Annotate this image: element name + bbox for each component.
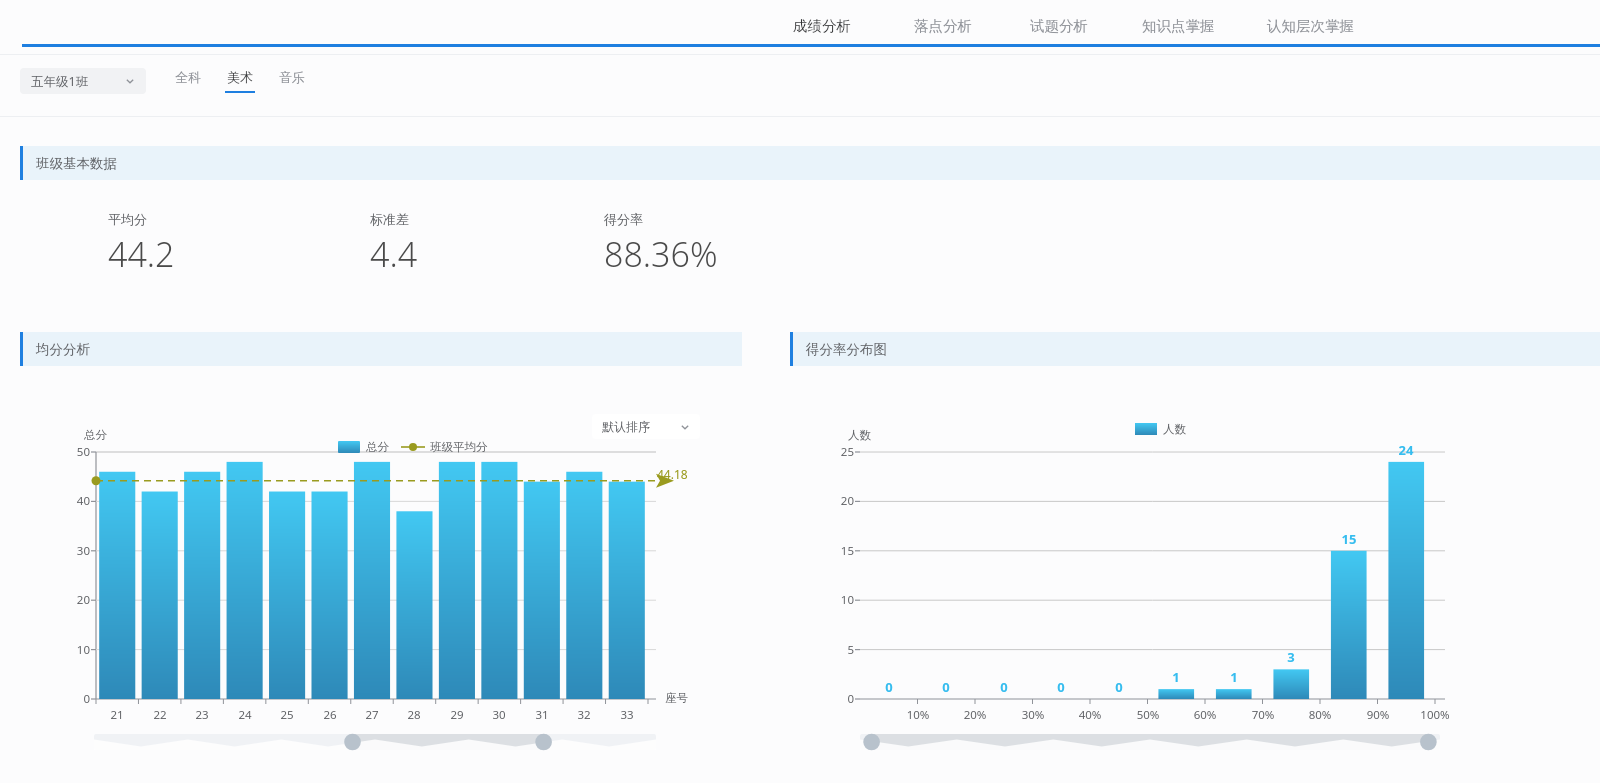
staticText: 0: [1099, 678, 1139, 696]
button[interactable]: [94, 734, 656, 750]
staticText: 28: [398, 707, 430, 723]
staticText: 33: [611, 707, 643, 723]
staticText: 31: [526, 707, 558, 723]
staticText: 座号: [665, 691, 688, 705]
staticText: 44.2: [108, 231, 175, 277]
staticText: 29: [441, 707, 473, 723]
staticText: 人数: [1163, 422, 1186, 436]
button[interactable]: 知识点掌握: [378, 0, 1600, 47]
staticText: 40%: [1068, 707, 1112, 723]
staticText: 1: [1156, 668, 1196, 686]
staticText: 80%: [1298, 707, 1342, 723]
staticText: 成绩分析: [793, 17, 851, 35]
staticText: 班级平均分: [430, 440, 488, 454]
staticText: 全科: [175, 69, 201, 85]
staticText: 20: [826, 493, 854, 509]
staticText: 50: [62, 444, 90, 460]
staticText: 20%: [953, 707, 997, 723]
staticText: 15: [826, 543, 854, 559]
staticText: 美术: [227, 69, 253, 85]
staticText: 平均分: [108, 211, 147, 227]
staticText: 24: [1386, 441, 1426, 459]
staticText: 32: [568, 707, 600, 723]
staticText: 25: [826, 444, 854, 460]
staticText: 50%: [1126, 707, 1170, 723]
button[interactable]: 五年级1班: [20, 68, 146, 94]
staticText: 默认排序: [602, 419, 650, 434]
staticText: 0: [1041, 678, 1081, 696]
button[interactable]: 落点分析: [143, 0, 1600, 47]
button[interactable]: 成绩分析: [22, 0, 1600, 47]
staticText: 标准差: [370, 211, 409, 227]
staticText: 落点分析: [914, 17, 972, 35]
button[interactable]: [860, 734, 1440, 750]
staticText: 21: [101, 707, 133, 723]
staticText: 30: [483, 707, 515, 723]
staticText: 总分: [366, 440, 389, 454]
staticText: 0: [984, 678, 1024, 696]
button[interactable]: 试题分析: [259, 0, 1600, 47]
staticText: 得分率: [604, 211, 643, 227]
staticText: 70%: [1241, 707, 1285, 723]
staticText: 88.36%: [604, 231, 718, 277]
staticText: 得分率分布图: [806, 341, 887, 358]
staticText: 10%: [896, 707, 940, 723]
staticText: 10: [826, 592, 854, 608]
staticText: 30: [62, 543, 90, 559]
staticText: 23: [186, 707, 218, 723]
button[interactable]: 认知层次掌握: [510, 0, 1600, 47]
staticText: 0: [62, 691, 90, 707]
staticText: 10: [62, 642, 90, 658]
staticText: 1: [1214, 668, 1254, 686]
button[interactable]: 音乐: [275, 69, 309, 93]
staticText: 总分: [84, 428, 107, 442]
staticText: 试题分析: [1030, 17, 1088, 35]
staticText: 26: [314, 707, 346, 723]
button[interactable]: 默认排序: [592, 414, 700, 439]
staticText: 30%: [1011, 707, 1055, 723]
staticText: 60%: [1183, 707, 1227, 723]
staticText: 22: [144, 707, 176, 723]
staticText: 知识点掌握: [1142, 17, 1215, 35]
staticText: 班级基本数据: [36, 155, 117, 172]
staticText: 40: [62, 493, 90, 509]
staticText: 五年级1班: [31, 73, 89, 90]
staticText: 音乐: [279, 69, 305, 85]
staticText: 90%: [1356, 707, 1400, 723]
staticText: 25: [271, 707, 303, 723]
staticText: 100%: [1413, 707, 1457, 723]
staticText: 人数: [848, 428, 871, 442]
staticText: 27: [356, 707, 388, 723]
staticText: 15: [1329, 530, 1369, 548]
staticText: 0: [926, 678, 966, 696]
staticText: 0: [869, 678, 909, 696]
button[interactable]: 美术: [223, 69, 257, 93]
staticText: 0: [826, 691, 854, 707]
staticText: 3: [1271, 648, 1311, 666]
staticText: 4.4: [370, 231, 418, 277]
staticText: 20: [62, 592, 90, 608]
button[interactable]: 全科: [171, 69, 205, 93]
staticText: 24: [229, 707, 261, 723]
staticText: 均分分析: [36, 341, 90, 358]
staticText: 认知层次掌握: [1267, 17, 1354, 35]
staticText: 5: [826, 642, 854, 658]
staticText: 44.18: [657, 466, 688, 482]
